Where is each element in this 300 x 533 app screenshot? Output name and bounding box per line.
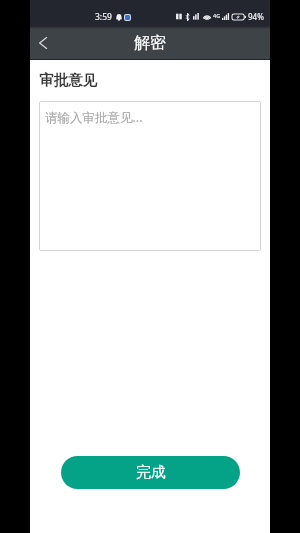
staticText: 完成 bbox=[136, 463, 166, 482]
staticText: 4G bbox=[213, 12, 221, 19]
staticText: 审批意见 bbox=[39, 71, 97, 89]
staticText: 请输入审批意见... bbox=[45, 109, 143, 126]
button[interactable]: 请输入审批意见... bbox=[39, 101, 261, 251]
staticText: 3:59 bbox=[95, 11, 112, 23]
button[interactable]: 完成 bbox=[61, 456, 240, 489]
staticText: 94% bbox=[248, 11, 264, 22]
button[interactable]: Back bbox=[30, 26, 56, 60]
staticText: 解密 bbox=[134, 33, 166, 53]
